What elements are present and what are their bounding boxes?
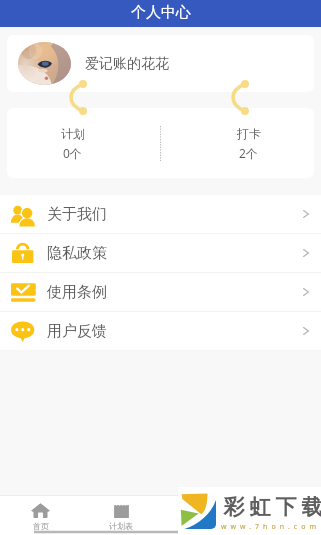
button[interactable]: 我的 bbox=[241, 496, 321, 535]
button[interactable]: 打卡 bbox=[172, 108, 314, 178]
button[interactable]: 用户反馈 bbox=[0, 312, 321, 350]
staticText: 打卡 bbox=[237, 126, 261, 141]
staticText: 个人中心 bbox=[131, 3, 191, 22]
staticText: 2个 bbox=[239, 145, 258, 161]
button[interactable]: 使用条例 bbox=[0, 273, 321, 311]
staticText: 用户反馈 bbox=[47, 322, 107, 341]
staticText: 首页 bbox=[33, 521, 49, 531]
staticText: 隐私政策 bbox=[47, 244, 107, 263]
button[interactable]: 首页 bbox=[0, 496, 81, 535]
staticText: 关于我们 bbox=[47, 205, 107, 224]
staticText: 计划表 bbox=[109, 521, 133, 531]
button[interactable]: 爱记账的花花 bbox=[7, 35, 314, 92]
staticText: 计划 bbox=[61, 126, 85, 141]
staticText: 发现 bbox=[193, 521, 209, 531]
button[interactable]: 隐私政策 bbox=[0, 234, 321, 272]
staticText: www.7hon.com bbox=[221, 522, 321, 532]
staticText: 爱记账的花花 bbox=[85, 55, 169, 73]
staticText: 使用条例 bbox=[47, 283, 107, 302]
button[interactable]: 关于我们 bbox=[0, 195, 321, 233]
button[interactable]: 计划表 bbox=[81, 496, 161, 535]
staticText: 彩虹下载 bbox=[221, 494, 321, 520]
staticText: 我的 bbox=[273, 521, 289, 531]
button[interactable]: 计划 bbox=[7, 108, 149, 178]
button[interactable]: 发现 bbox=[161, 496, 241, 535]
staticText: 0个 bbox=[63, 145, 82, 161]
